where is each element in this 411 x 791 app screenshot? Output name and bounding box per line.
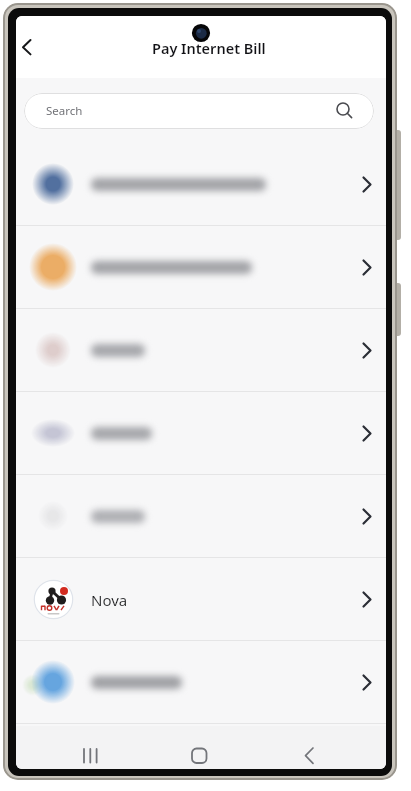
button[interactable]: Search: [24, 93, 374, 129]
button[interactable]: [16, 143, 386, 226]
staticText: Pay Internet Bill: [152, 38, 266, 58]
button[interactable]: [16, 475, 386, 558]
button[interactable]: [16, 392, 386, 475]
button[interactable]: [16, 309, 386, 392]
button[interactable]: [184, 743, 214, 769]
staticText: Nova: [91, 590, 128, 610]
button[interactable]: [294, 743, 324, 769]
button[interactable]: [16, 641, 386, 724]
staticText: Search: [46, 103, 83, 119]
button[interactable]: [16, 558, 386, 641]
button[interactable]: [16, 31, 48, 63]
button[interactable]: [16, 226, 386, 309]
button[interactable]: [74, 743, 108, 769]
